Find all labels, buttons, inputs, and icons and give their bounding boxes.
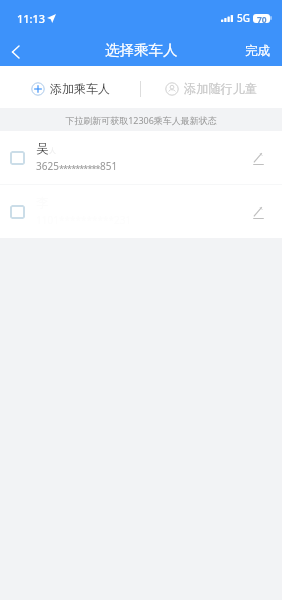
staticText: 70 (257, 14, 267, 23)
staticText: 851 (100, 159, 118, 173)
button[interactable]: 吴 (0, 131, 282, 184)
staticText: 吴 (36, 141, 49, 157)
staticText: 人 (49, 146, 56, 155)
button[interactable]: 添加乘车人 (0, 81, 140, 96)
button[interactable]: 李 (0, 185, 282, 238)
staticText: 11:13 (17, 11, 46, 26)
button[interactable]: Edit (246, 146, 270, 170)
button[interactable]: Edit (246, 200, 270, 224)
button[interactable]: Back (0, 36, 30, 66)
staticText: ********** (59, 162, 100, 174)
staticText: 下拉刷新可获取12306乘车人最新状态 (65, 114, 217, 126)
staticText: 添加乘车人 (50, 81, 110, 96)
button[interactable]: 完成 (233, 35, 282, 65)
staticText: 3625 (36, 159, 59, 173)
staticText: 选择乘车人 (105, 41, 178, 59)
staticText: 5G (237, 11, 250, 25)
button[interactable]: 添加随行儿童 (141, 81, 282, 96)
staticText: 添加随行儿童 (184, 81, 258, 96)
staticText: 完成 (245, 43, 270, 57)
